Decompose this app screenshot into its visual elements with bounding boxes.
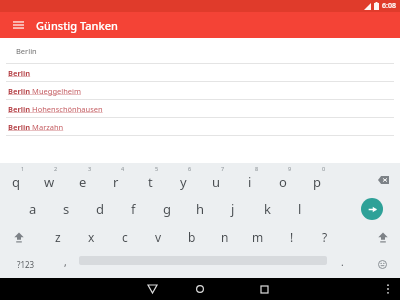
button[interactable]: m [242,223,274,251]
button[interactable]: x [75,223,107,251]
button[interactable]: b [176,223,208,251]
staticText: Berlin Mueggelheim [8,86,81,96]
staticText: Günstig Tanken [36,18,118,33]
staticText: 3 [88,165,92,172]
staticText: q [12,173,20,191]
button[interactable]: n [209,223,241,251]
button[interactable]: v [142,223,174,251]
staticText: Berlin Hohenschönhausen [8,104,103,114]
staticText: 7 [221,165,225,172]
button[interactable]: 7 [200,163,232,195]
button[interactable]: Berlin Hohenschönhausen [0,100,400,118]
button[interactable]: c [109,223,141,251]
button[interactable]: Shift [370,226,396,248]
button[interactable]: Recent apps [247,278,281,300]
staticText: 8 [255,165,259,172]
button[interactable]: 5 [134,163,166,195]
button[interactable]: Search [361,198,383,220]
button[interactable]: ?123 [6,251,46,278]
staticText: l [298,200,302,218]
staticText: 9 [288,165,292,172]
button[interactable]: Back [135,278,169,300]
button[interactable]: z [42,223,74,251]
staticText: . [341,255,344,269]
button[interactable]: ! [276,223,308,251]
button[interactable]: l [284,195,316,223]
staticText: p [313,173,321,191]
staticText: z [55,229,61,245]
staticText: u [212,173,221,191]
staticText: Berlin Marzahn [8,122,64,132]
button[interactable]: . [330,251,354,278]
button[interactable]: 6 [167,163,199,195]
staticText: t [148,173,153,191]
button[interactable]: f [117,195,149,223]
button[interactable]: s [50,195,82,223]
button[interactable]: 4 [100,163,132,195]
staticText: g [163,200,171,218]
staticText: , [64,255,67,269]
button[interactable]: k [251,195,283,223]
staticText: ! [290,229,294,245]
button[interactable]: Shift [6,226,32,248]
staticText: o [279,173,287,191]
button[interactable]: 0 [301,163,333,195]
button[interactable]: , [52,251,78,278]
staticText: 4 [121,165,125,172]
staticText: w [44,173,55,191]
staticText: b [188,229,196,245]
staticText: a [29,200,37,218]
button[interactable]: d [84,195,116,223]
staticText: 6:08 [382,1,396,11]
staticText: y [180,173,187,191]
button[interactable]: Berlin [0,38,400,63]
staticText: i [248,173,252,191]
button[interactable]: Home [183,278,217,300]
staticText: j [231,200,235,218]
button[interactable]: 1 [0,163,32,195]
staticText: 5 [155,165,159,172]
button[interactable]: g [151,195,183,223]
button[interactable]: Berlin [0,64,400,82]
button[interactable]: 9 [267,163,299,195]
button[interactable]: h [184,195,216,223]
button[interactable]: Backspace [371,171,395,189]
staticText: h [196,200,205,218]
button[interactable]: ? [309,223,341,251]
staticText: c [122,229,128,245]
button[interactable]: j [217,195,249,223]
button[interactable]: Emoji [368,251,396,278]
staticText: ?123 [17,259,35,270]
staticText: r [113,173,119,191]
button[interactable]: More options [376,278,400,300]
staticText: ? [322,229,328,245]
staticText: v [155,229,162,245]
staticText: Berlin [8,68,31,78]
button[interactable]: a [17,195,49,223]
staticText: f [131,200,136,218]
staticText: 1 [21,165,25,172]
button[interactable]: Berlin Marzahn [0,118,400,136]
staticText: s [63,200,70,218]
button[interactable]: 3 [67,163,99,195]
button[interactable]: 8 [234,163,266,195]
staticText: 0 [322,165,326,172]
button[interactable]: 2 [33,163,65,195]
staticText: x [88,229,95,245]
button[interactable]: Berlin Mueggelheim [0,82,400,100]
staticText: e [79,173,87,191]
staticText: d [96,200,104,218]
staticText: n [221,229,229,245]
staticText: k [264,200,271,218]
staticText: Berlin [16,46,37,56]
staticText: m [252,229,264,245]
staticText: 2 [54,165,58,172]
button[interactable]: Open navigation menu [0,12,36,38]
staticText: 6 [188,165,192,172]
